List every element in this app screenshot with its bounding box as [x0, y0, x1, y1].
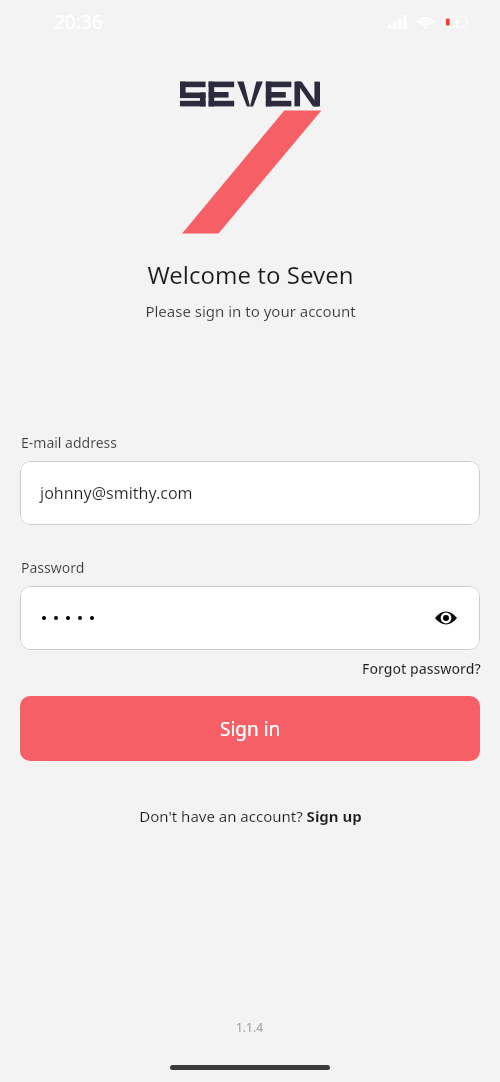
button[interactable]: Show password	[428, 600, 464, 636]
button[interactable]: johnny@smithy.com	[20, 461, 480, 525]
staticText: 20:36	[54, 9, 103, 35]
button[interactable]: Show password	[20, 586, 480, 650]
staticText: johnny@smithy.com	[40, 482, 193, 504]
button[interactable]: Forgot password?	[362, 659, 481, 678]
button[interactable]: Sign in	[20, 696, 480, 761]
staticText: Password	[21, 558, 85, 577]
staticText: E-mail address	[21, 433, 117, 452]
staticText: Forgot password?	[362, 659, 481, 678]
staticText: Please sign in to your account	[145, 301, 356, 321]
staticText: 1.1.4	[236, 1019, 264, 1035]
staticText: Sign in	[220, 716, 281, 742]
staticText: Don't have an account? Sign up	[139, 806, 362, 826]
staticText: Welcome to Seven	[147, 258, 354, 291]
button[interactable]: Don't have an account? Sign up	[139, 806, 362, 826]
